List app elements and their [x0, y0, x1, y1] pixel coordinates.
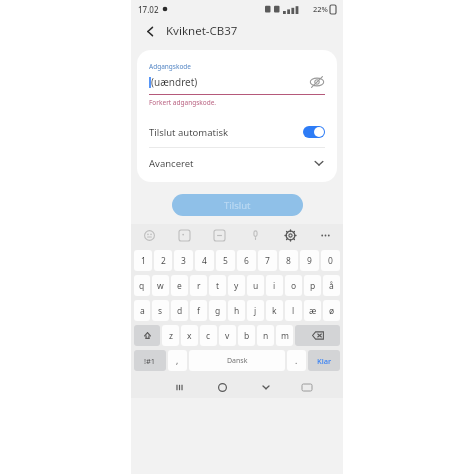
button[interactable]: Hide keyboard: [244, 376, 287, 398]
button[interactable]: Settings: [280, 225, 300, 245]
button[interactable]: Backspace: [295, 325, 340, 346]
button[interactable]: Back: [140, 21, 160, 41]
button[interactable]: Home: [201, 376, 244, 398]
staticText: f: [197, 305, 200, 317]
button[interactable]: c: [200, 325, 217, 346]
button[interactable]: More options: [315, 225, 335, 245]
button[interactable]: g: [209, 300, 226, 321]
staticText: o: [291, 280, 297, 292]
staticText: e: [177, 280, 182, 292]
staticText: Tilslut: [224, 199, 251, 212]
button[interactable]: u: [247, 275, 264, 296]
staticText: Klar: [317, 356, 332, 366]
staticText: b: [244, 330, 250, 342]
staticText: Tilslut automatisk: [149, 126, 229, 139]
staticText: g: [215, 305, 221, 317]
staticText: z: [169, 330, 173, 342]
staticText: a: [140, 305, 145, 317]
button[interactable]: a: [134, 300, 150, 321]
staticText: s: [158, 305, 163, 317]
button[interactable]: y: [228, 275, 245, 296]
button[interactable]: l: [285, 300, 302, 321]
button[interactable]: Dansk: [189, 350, 285, 371]
staticText: l: [292, 305, 295, 317]
staticText: 17.02: [138, 4, 159, 15]
button[interactable]: 0: [321, 250, 340, 271]
staticText: 4: [202, 255, 207, 267]
button[interactable]: k: [266, 300, 283, 321]
button[interactable]: z: [162, 325, 179, 346]
button[interactable]: Klar: [308, 350, 340, 371]
button[interactable]: Tilslut automatisk: [137, 117, 337, 147]
staticText: p: [310, 280, 316, 292]
button[interactable]: w: [152, 275, 169, 296]
button[interactable]: 2: [154, 250, 172, 271]
staticText: 2: [161, 255, 166, 267]
button[interactable]: b: [238, 325, 255, 346]
staticText: q: [139, 280, 145, 292]
staticText: u: [253, 280, 259, 292]
button[interactable]: Tilslut: [172, 194, 303, 216]
button[interactable]: 8: [279, 250, 298, 271]
button[interactable]: !#1: [134, 350, 166, 371]
button[interactable]: t: [209, 275, 226, 296]
button[interactable]: i: [266, 275, 283, 296]
button[interactable]: f: [190, 300, 207, 321]
button[interactable]: æ: [304, 300, 321, 321]
staticText: c: [206, 330, 211, 342]
button[interactable]: 9: [300, 250, 319, 271]
button[interactable]: x: [181, 325, 198, 346]
staticText: 6: [244, 255, 249, 267]
staticText: i: [273, 280, 276, 292]
button[interactable]: o: [285, 275, 302, 296]
button[interactable]: Recents: [158, 376, 201, 398]
staticText: w: [157, 280, 164, 292]
button[interactable]: 5: [216, 250, 235, 271]
staticText: 5: [223, 255, 228, 267]
button[interactable]: m: [276, 325, 293, 346]
button[interactable]: ø: [323, 300, 340, 321]
button[interactable]: Emoji: [139, 225, 159, 245]
staticText: Adgangskode: [149, 62, 191, 71]
staticText: å: [329, 280, 334, 292]
button[interactable]: s: [152, 300, 169, 321]
staticText: (uændret): [151, 75, 198, 89]
button[interactable]: Shift: [134, 325, 160, 346]
button[interactable]: .: [287, 350, 306, 371]
staticText: Forkert adgangskode.: [149, 98, 217, 107]
button[interactable]: å: [323, 275, 340, 296]
button[interactable]: e: [171, 275, 188, 296]
button[interactable]: q: [134, 275, 150, 296]
button[interactable]: v: [219, 325, 236, 346]
button[interactable]: 4: [195, 250, 214, 271]
button[interactable]: h: [228, 300, 245, 321]
button[interactable]: d: [171, 300, 188, 321]
button[interactable]: Show password: [309, 74, 325, 90]
staticText: 7: [265, 255, 270, 267]
button[interactable]: 6: [237, 250, 256, 271]
button[interactable]: p: [304, 275, 321, 296]
staticText: 9: [307, 255, 312, 267]
staticText: !#1: [144, 356, 156, 366]
button[interactable]: n: [257, 325, 274, 346]
button[interactable]: r: [190, 275, 207, 296]
button[interactable]: 3: [174, 250, 193, 271]
staticText: 1: [141, 255, 146, 267]
staticText: y: [234, 280, 239, 292]
button[interactable]: j: [247, 300, 264, 321]
staticText: h: [234, 305, 240, 317]
staticText: .: [295, 355, 298, 367]
button[interactable]: Avanceret: [137, 148, 337, 178]
button[interactable]: Stickers: [174, 225, 194, 245]
button[interactable]: Change keyboard: [287, 376, 326, 398]
staticText: ø: [329, 305, 335, 317]
staticText: 0: [328, 255, 333, 267]
button[interactable]: 1: [134, 250, 152, 271]
staticText: j: [254, 305, 257, 317]
button[interactable]: GIF: [209, 225, 229, 245]
button[interactable]: Voice input: [245, 225, 265, 245]
staticText: æ: [309, 305, 317, 317]
button[interactable]: 7: [258, 250, 277, 271]
staticText: k: [272, 305, 277, 317]
button[interactable]: ,: [168, 350, 187, 371]
